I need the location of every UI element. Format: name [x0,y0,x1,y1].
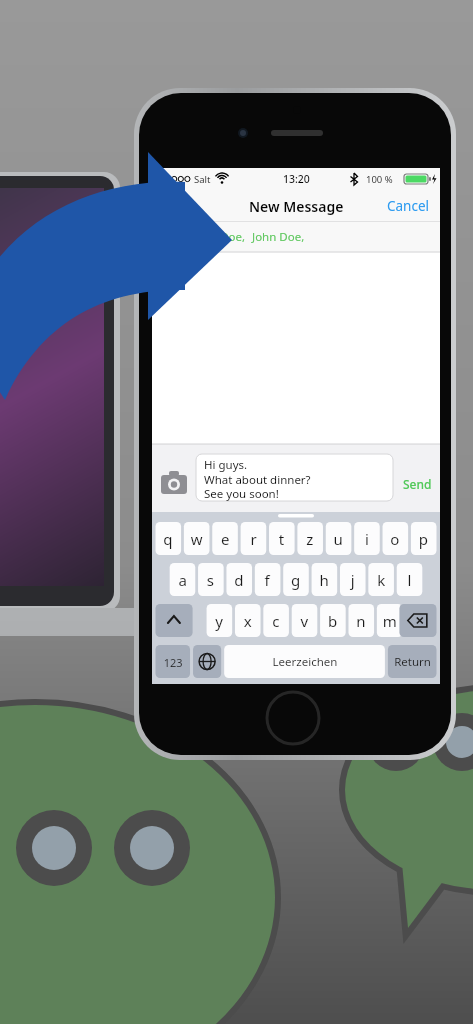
button[interactable]: New Message demo screen [0,0,473,1024]
